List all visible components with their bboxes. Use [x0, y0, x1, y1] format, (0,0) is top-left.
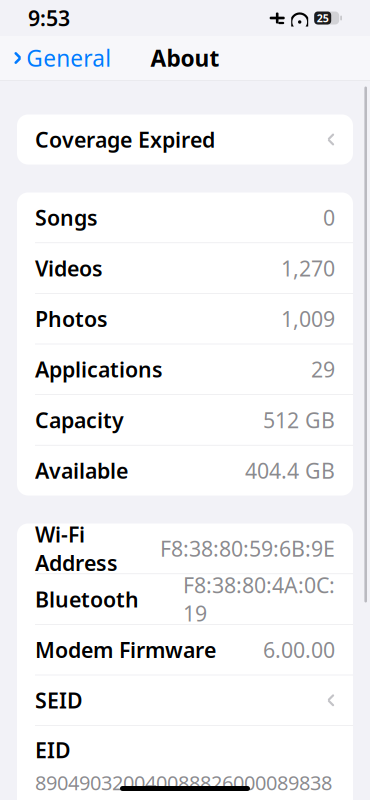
staticText: Modem Firmware	[35, 635, 216, 664]
button[interactable]: General	[2, 37, 123, 79]
button[interactable]: SEID	[17, 675, 353, 725]
staticText: 0	[323, 203, 335, 232]
staticText: 1,009	[281, 304, 335, 333]
staticText: 512 GB	[263, 406, 335, 434]
staticText: SEID	[35, 686, 83, 714]
staticText: Videos	[35, 254, 103, 282]
staticText: Bluetooth	[35, 585, 139, 613]
button[interactable]: Coverage Expired	[17, 114, 353, 164]
staticText: Available	[35, 456, 128, 485]
staticText: Songs	[35, 203, 98, 232]
staticText: EID	[35, 736, 71, 764]
staticText: 6.00.00	[263, 635, 335, 664]
staticText: F8:38:80:59:6B:9E	[160, 534, 335, 563]
staticText: F8:38:80:4A:0C:19	[183, 571, 335, 627]
staticText: About	[150, 43, 219, 73]
staticText: Photos	[35, 304, 108, 333]
staticText: 29	[311, 355, 335, 383]
staticText: Applications	[35, 355, 163, 383]
staticText: 404.4 GB	[245, 456, 335, 485]
staticText: Wi-Fi Address	[35, 520, 118, 577]
staticText: Coverage Expired	[35, 125, 215, 154]
staticText: General	[26, 43, 111, 73]
staticText: 1,270	[281, 254, 335, 282]
staticText: Capacity	[35, 406, 124, 434]
staticText: 89049032004008882600008983801352	[35, 769, 332, 800]
staticText: 9:53	[28, 4, 70, 32]
staticText: 25	[317, 11, 329, 25]
